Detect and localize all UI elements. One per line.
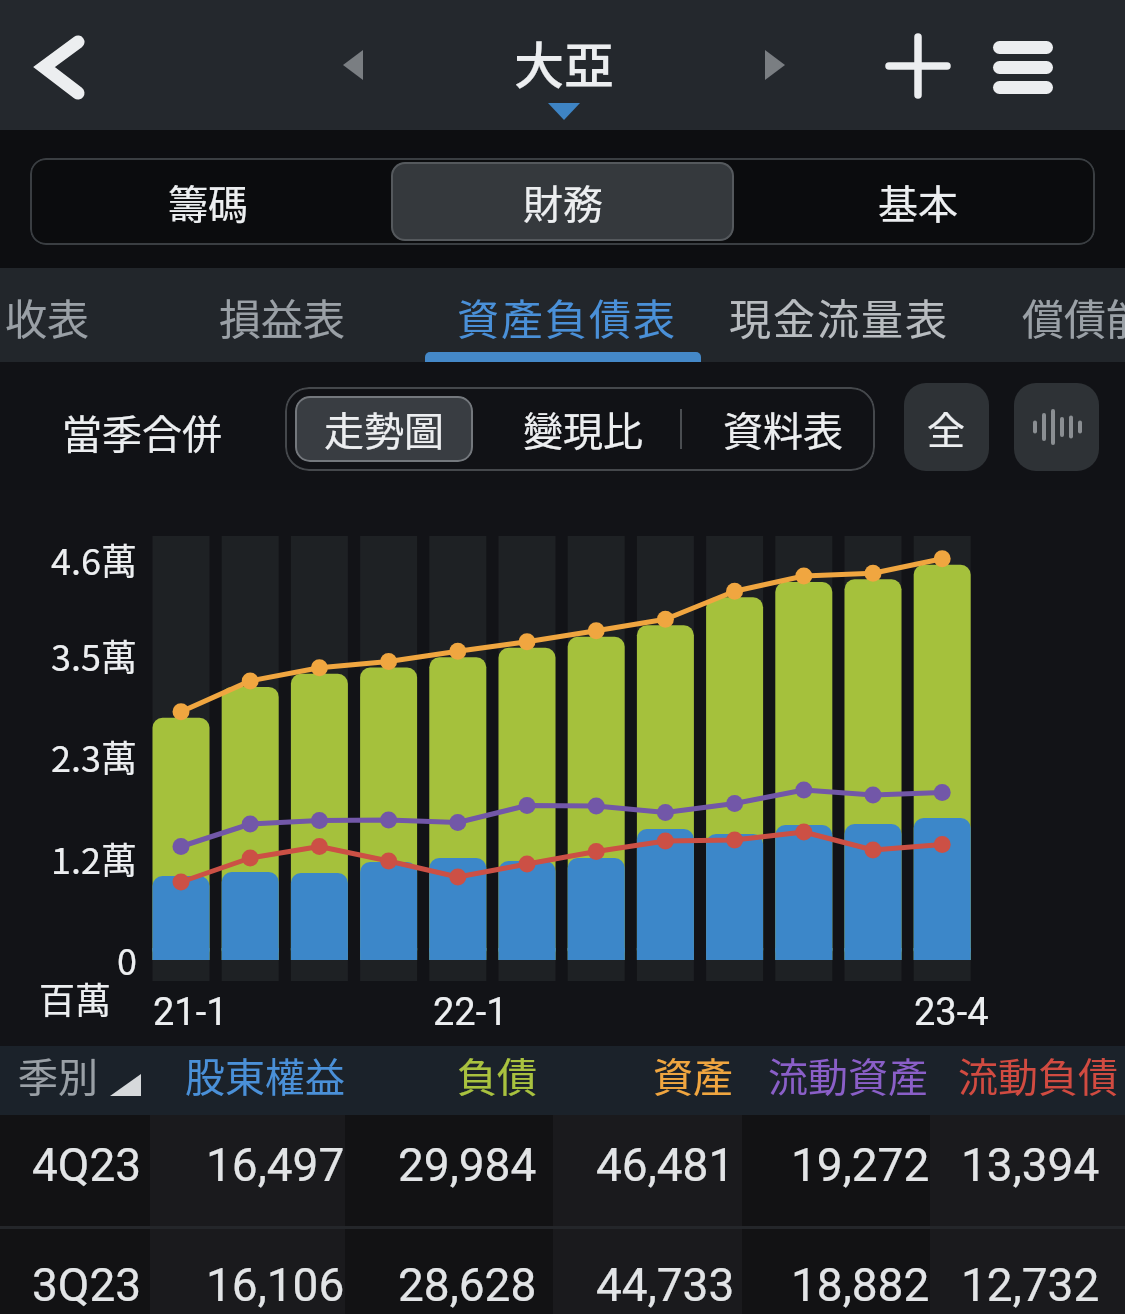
staticText: 28,628: [398, 1258, 537, 1312]
staticText: 資料表: [723, 400, 843, 458]
button[interactable]: 3Q23: [0, 1229, 1125, 1314]
staticText: 1.2萬: [51, 832, 137, 884]
staticText: 16,497: [206, 1138, 345, 1192]
staticText: 3Q23: [32, 1258, 142, 1312]
staticText: 損益表: [219, 286, 346, 347]
staticText: 收表: [5, 286, 90, 347]
button[interactable]: [420, 268, 705, 362]
staticText: 19,272: [791, 1138, 930, 1192]
staticText: 3.5萬: [51, 629, 137, 681]
staticText: 2.3萬: [51, 730, 137, 782]
button[interactable]: 基本: [740, 158, 1095, 245]
staticText: 走勢圖: [324, 400, 444, 458]
staticText: 21-1: [153, 990, 228, 1035]
button[interactable]: [40, 395, 245, 471]
staticText: 16,106: [206, 1258, 345, 1312]
staticText: 負債: [457, 1046, 537, 1104]
button[interactable]: [990, 35, 1060, 97]
button[interactable]: 籌碼: [30, 158, 385, 245]
button[interactable]: 資料表: [698, 387, 868, 471]
staticText: 資產: [653, 1046, 733, 1104]
button[interactable]: 變現比: [493, 387, 673, 471]
staticText: 季別: [18, 1046, 98, 1104]
staticText: 46,481: [596, 1138, 735, 1192]
staticText: 流動負債: [958, 1046, 1118, 1104]
button[interactable]: [762, 50, 788, 80]
staticText: 12,732: [961, 1258, 1100, 1312]
button[interactable]: [340, 50, 366, 80]
button[interactable]: [715, 268, 965, 362]
button[interactable]: [20, 25, 100, 110]
staticText: 23-4: [914, 990, 989, 1035]
staticText: 基本: [878, 173, 958, 231]
staticText: 資產負債表: [457, 286, 678, 347]
staticText: 4Q23: [32, 1138, 142, 1192]
staticText: 百萬: [39, 972, 112, 1024]
staticText: 22-1: [433, 990, 508, 1035]
button[interactable]: 4Q23: [0, 1115, 1125, 1226]
staticText: 13,394: [961, 1138, 1100, 1192]
staticText: 4.6萬: [51, 533, 137, 585]
staticText: 籌碼: [168, 173, 248, 231]
button[interactable]: 全: [904, 383, 989, 471]
button[interactable]: [880, 28, 956, 104]
button[interactable]: [1014, 383, 1099, 471]
staticText: 變現比: [523, 400, 643, 458]
staticText: 全: [927, 400, 966, 455]
staticText: 償債能: [1022, 286, 1125, 347]
staticText: 財務: [523, 173, 603, 231]
staticText: 流動資產: [768, 1046, 928, 1104]
button[interactable]: [190, 268, 375, 362]
staticText: 當季合併: [62, 403, 222, 461]
button[interactable]: 走勢圖: [295, 396, 473, 462]
staticText: 29,984: [398, 1138, 537, 1192]
button[interactable]: 財務: [391, 162, 734, 241]
staticText: 44,733: [596, 1258, 735, 1312]
staticText: 現金流量表: [729, 286, 950, 347]
staticText: 18,882: [791, 1258, 930, 1312]
staticText: 大亞: [514, 26, 614, 98]
staticText: 0: [117, 933, 137, 985]
staticText: 股東權益: [185, 1046, 345, 1104]
